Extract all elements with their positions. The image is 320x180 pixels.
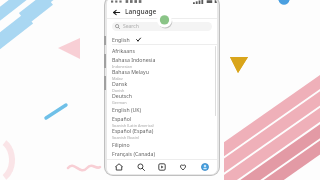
button[interactable]: Profile — [196, 160, 214, 174]
button[interactable]: Reels — [153, 160, 171, 174]
button[interactable]: Afrikaans — [107, 45, 217, 56]
staticText: German — [112, 100, 127, 104]
staticText: Spanish (Latin America) — [112, 123, 154, 127]
button[interactable]: Español (España) — [107, 127, 217, 139]
staticText: Español (España) — [112, 127, 154, 134]
button[interactable]: Search — [132, 160, 150, 174]
staticText: English — [112, 36, 130, 43]
staticText: English (UK) — [112, 106, 142, 113]
staticText: Indonesian — [112, 64, 133, 68]
staticText: Malay — [112, 76, 123, 80]
staticText: Search — [123, 23, 139, 30]
button[interactable]: Bahasa Melayu — [107, 68, 217, 80]
staticText: Español — [112, 115, 132, 122]
staticText: Spanish (Spain) — [112, 135, 140, 139]
button[interactable]: Français (Canada) — [107, 150, 217, 159]
button[interactable]: Activity — [174, 160, 192, 174]
staticText: Filipino — [112, 141, 130, 148]
button[interactable]: Bahasa Indonesia — [107, 56, 217, 68]
button[interactable]: English — [107, 34, 217, 44]
button[interactable]: Español — [107, 115, 217, 127]
button[interactable]: Back — [111, 7, 121, 17]
button[interactable]: Dansk — [107, 80, 217, 92]
button[interactable]: Search — [112, 22, 212, 31]
button[interactable]: English (UK) — [107, 104, 217, 115]
staticText: Français (Canada) — [112, 150, 155, 157]
button[interactable]: Home — [110, 160, 128, 174]
staticText: Language — [125, 7, 157, 16]
button[interactable]: Filipino — [107, 139, 217, 150]
staticText: Dansk — [112, 80, 128, 87]
staticText: Danish — [112, 88, 125, 92]
staticText: Deutsch — [112, 92, 132, 99]
button[interactable]: Deutsch — [107, 92, 217, 104]
staticText: Bahasa Indonesia — [112, 56, 156, 63]
staticText: Bahasa Melayu — [112, 68, 149, 75]
staticText: Afrikaans — [112, 47, 135, 54]
